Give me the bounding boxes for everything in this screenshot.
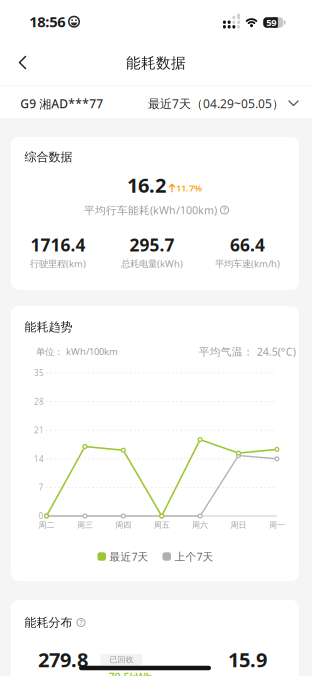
staticText: 66.4 bbox=[230, 233, 265, 256]
staticText: 7 bbox=[38, 482, 43, 493]
staticText: 行驶里程(km) bbox=[30, 257, 86, 270]
staticText: 70.5kWh bbox=[108, 669, 152, 676]
staticText: 周日 bbox=[230, 520, 246, 530]
button[interactable]: 上个7天 bbox=[162, 549, 213, 564]
staticText: 上个7天 bbox=[174, 549, 213, 564]
staticText: ? bbox=[223, 206, 226, 214]
staticText: 能耗趋势 bbox=[24, 320, 72, 334]
staticText: 能耗分布 bbox=[24, 615, 72, 630]
staticText: 周六 bbox=[192, 520, 208, 530]
staticText: 平均行车能耗(kWh/100km) bbox=[84, 203, 217, 217]
staticText: 279.8 bbox=[38, 646, 88, 673]
staticText: 59 bbox=[266, 16, 276, 29]
staticText: 最近7天 bbox=[109, 549, 148, 564]
staticText: 总耗电量(kWh) bbox=[121, 257, 183, 270]
staticText: 14 bbox=[34, 453, 44, 464]
staticText: 周一 bbox=[269, 520, 285, 530]
staticText: 周二 bbox=[38, 520, 54, 530]
staticText: 已回收 bbox=[109, 655, 133, 664]
staticText: 能耗数据 bbox=[126, 54, 186, 72]
button[interactable]: 最近7天 bbox=[97, 549, 148, 564]
staticText: ? bbox=[79, 618, 82, 627]
staticText: 18:56 bbox=[29, 12, 65, 31]
button[interactable]: ? bbox=[76, 618, 85, 627]
staticText: 综合数据 bbox=[24, 150, 72, 164]
staticText: 15.9 bbox=[228, 646, 267, 673]
staticText: 单位： kWh/100km bbox=[36, 345, 118, 358]
staticText: 0 bbox=[38, 511, 43, 521]
button[interactable]: 最近7天（04.29~05.05） bbox=[148, 95, 298, 111]
staticText: 周四 bbox=[115, 520, 131, 530]
staticText: 最近7天（04.29~05.05） bbox=[148, 95, 284, 111]
staticText: 28 bbox=[34, 396, 44, 407]
staticText: 16.2 bbox=[127, 172, 166, 198]
staticText: 295.7 bbox=[129, 233, 174, 256]
button[interactable]: G9 湘AD***77 bbox=[20, 95, 103, 111]
staticText: 35 bbox=[34, 368, 44, 378]
button[interactable]: ? bbox=[220, 205, 229, 214]
staticText: 平均车速(km/h) bbox=[215, 257, 280, 270]
staticText: 11.7% bbox=[176, 182, 202, 194]
staticText: 周五 bbox=[154, 520, 170, 530]
staticText: 1716.4 bbox=[30, 233, 85, 256]
staticText: G9 湘AD***77 bbox=[20, 95, 103, 111]
staticText: 21 bbox=[34, 425, 44, 435]
staticText: 周三 bbox=[77, 520, 93, 530]
staticText: 平均气温： 24.5(°C) bbox=[199, 344, 296, 359]
button[interactable] bbox=[11, 48, 34, 76]
